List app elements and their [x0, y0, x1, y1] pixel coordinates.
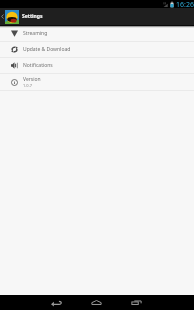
staticText: Streaming	[23, 30, 48, 37]
staticText: Settings	[22, 13, 43, 20]
button[interactable]: Home	[76, 295, 116, 310]
button[interactable]: Version	[0, 74, 194, 90]
button[interactable]: Recent apps	[116, 295, 156, 310]
button[interactable]: Back	[36, 295, 76, 310]
staticText: 1.0.7	[23, 83, 33, 88]
button[interactable]: Notifications	[0, 58, 194, 73]
staticText: 16:26	[176, 0, 194, 8]
button[interactable]: Navigate up	[0, 8, 5, 25]
staticText: Update & Download	[23, 46, 71, 53]
button[interactable]: Update & Download	[0, 42, 194, 57]
staticText: Notifications	[23, 62, 53, 69]
staticText: Version	[23, 76, 41, 83]
button[interactable]: Streaming	[0, 26, 194, 41]
